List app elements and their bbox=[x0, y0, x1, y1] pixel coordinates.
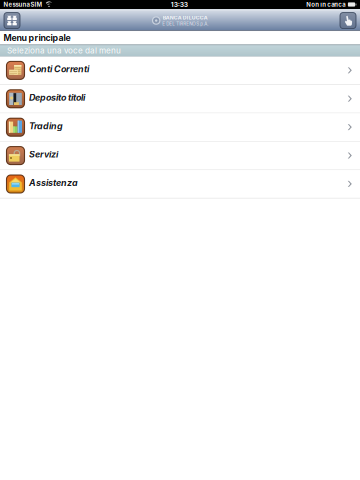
staticText: E DEL TIRRENO S.p.A. bbox=[162, 21, 208, 27]
staticText: BANCA DI LUCCA bbox=[163, 14, 208, 21]
button[interactable]: Tocca bbox=[339, 11, 357, 29]
staticText: Seleziona una voce dal menu bbox=[7, 46, 121, 55]
button[interactable]: Trading bbox=[0, 113, 360, 141]
button[interactable]: Assistenza bbox=[0, 170, 360, 198]
staticText: Assistenza bbox=[29, 177, 78, 188]
button[interactable]: Deposito titoli bbox=[0, 85, 360, 113]
staticText: Trading bbox=[29, 120, 63, 131]
staticText: 13:33 bbox=[171, 0, 188, 9]
button[interactable]: Menu bbox=[3, 11, 21, 29]
staticText: Nessuna SIM bbox=[4, 1, 43, 8]
staticText: Non in carica bbox=[306, 1, 345, 8]
button[interactable]: Conti Correnti bbox=[0, 57, 360, 84]
staticText: Servizi bbox=[29, 149, 58, 160]
button[interactable]: Servizi bbox=[0, 142, 360, 169]
staticText: Conti Correnti bbox=[29, 64, 89, 74]
staticText: Deposito titoli bbox=[29, 92, 85, 103]
staticText: Menu principale bbox=[3, 32, 70, 43]
